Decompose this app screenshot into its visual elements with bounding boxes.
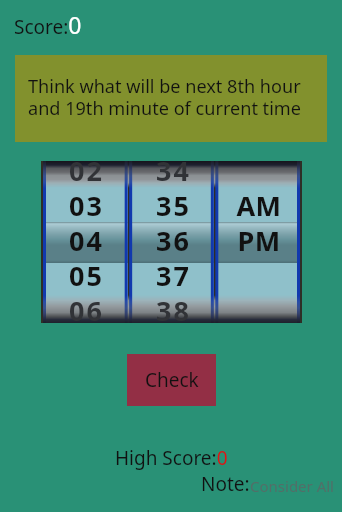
button[interactable]: AM (216, 161, 300, 323)
button[interactable]: 34 (130, 161, 214, 323)
button[interactable]: Check (127, 354, 216, 406)
staticText: 03 (69, 187, 104, 219)
staticText: 04 (69, 222, 104, 254)
staticText: Consider All (250, 476, 334, 496)
staticText: 37 (156, 257, 191, 289)
staticText: 06 (69, 292, 104, 324)
staticText: 36 (156, 222, 191, 254)
staticText: 38 (156, 292, 191, 324)
staticText: 06 (69, 292, 104, 324)
staticText: High Score:0 (115, 445, 228, 471)
staticText: 02 (69, 152, 104, 184)
staticText: 02 (69, 152, 104, 184)
staticText: PM (237, 222, 281, 254)
staticText: Score:0 (14, 9, 82, 40)
staticText: 35 (156, 187, 191, 219)
staticText: Check (145, 367, 199, 393)
staticText: AM (236, 187, 282, 219)
staticText: 34 (156, 152, 191, 184)
staticText: Think what will be next 8th hour and 19t… (28, 74, 308, 121)
staticText: Note: (201, 471, 250, 497)
button[interactable]: 02 (43, 161, 128, 323)
staticText: 34 (156, 152, 191, 184)
staticText: 38 (156, 292, 191, 324)
staticText: 05 (69, 257, 104, 289)
